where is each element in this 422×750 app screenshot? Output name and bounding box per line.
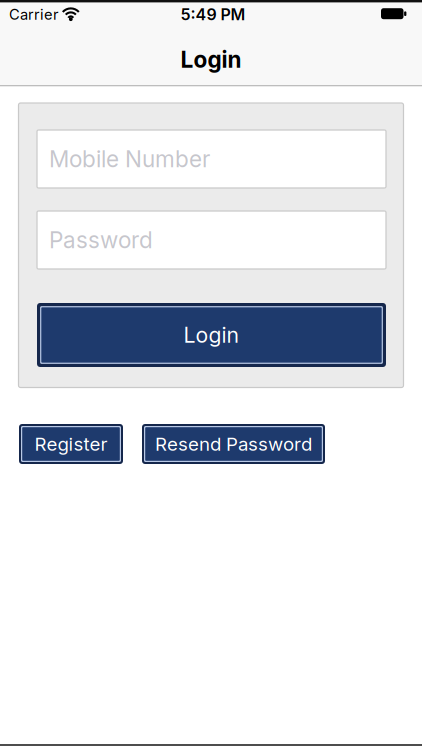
button[interactable]: Login (37, 303, 386, 367)
staticText: Carrier (9, 6, 59, 23)
staticText: 5:49 PM (180, 5, 245, 24)
button[interactable]: Register (19, 424, 123, 464)
staticText: Mobile Number (49, 146, 210, 172)
staticText: Register (34, 433, 107, 455)
staticText: Login (183, 322, 239, 348)
staticText: Login (180, 46, 241, 73)
button[interactable]: Resend Password (142, 424, 325, 464)
staticText: Resend Password (155, 433, 312, 455)
staticText: Password (49, 227, 153, 253)
